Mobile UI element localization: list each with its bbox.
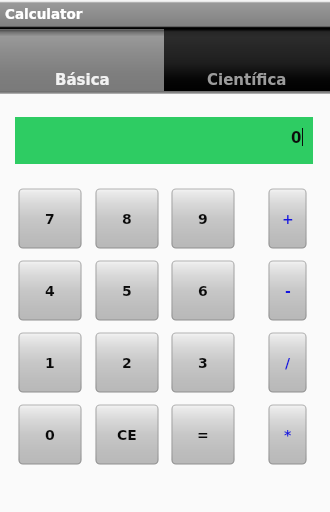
- button[interactable]: Básica: [0, 29, 164, 91]
- staticText: 4: [45, 283, 55, 299]
- button[interactable]: 6: [172, 261, 234, 320]
- button[interactable]: /: [269, 333, 306, 392]
- staticText: 6: [198, 283, 208, 299]
- staticText: 3: [198, 355, 208, 371]
- staticText: 8: [122, 211, 132, 227]
- staticText: Básica: [55, 71, 110, 88]
- staticText: /: [285, 355, 291, 371]
- staticText: 0: [291, 129, 302, 146]
- staticText: -: [285, 283, 291, 299]
- staticText: 1: [45, 355, 55, 371]
- button[interactable]: 5: [96, 261, 158, 320]
- staticText: 5: [122, 283, 132, 299]
- button[interactable]: 3: [172, 333, 234, 392]
- button[interactable]: 1: [19, 333, 81, 392]
- button[interactable]: -: [269, 261, 306, 320]
- staticText: 0: [45, 427, 55, 443]
- button[interactable]: 7: [19, 189, 81, 248]
- button[interactable]: 8: [96, 189, 158, 248]
- button[interactable]: CE: [96, 405, 158, 464]
- staticText: Científica: [207, 71, 287, 88]
- button[interactable]: 0: [19, 405, 81, 464]
- staticText: *: [284, 427, 292, 443]
- staticText: 2: [122, 355, 132, 371]
- button[interactable]: =: [172, 405, 234, 464]
- staticText: Calculator: [5, 6, 83, 22]
- staticText: =: [197, 427, 209, 443]
- button[interactable]: +: [269, 189, 306, 248]
- staticText: 9: [198, 211, 208, 227]
- button[interactable]: Científica: [164, 29, 330, 91]
- staticText: +: [282, 211, 294, 227]
- button[interactable]: 9: [172, 189, 234, 248]
- button[interactable]: 4: [19, 261, 81, 320]
- button[interactable]: 2: [96, 333, 158, 392]
- button[interactable]: *: [269, 405, 306, 464]
- staticText: 7: [45, 211, 55, 227]
- staticText: CE: [117, 427, 137, 443]
